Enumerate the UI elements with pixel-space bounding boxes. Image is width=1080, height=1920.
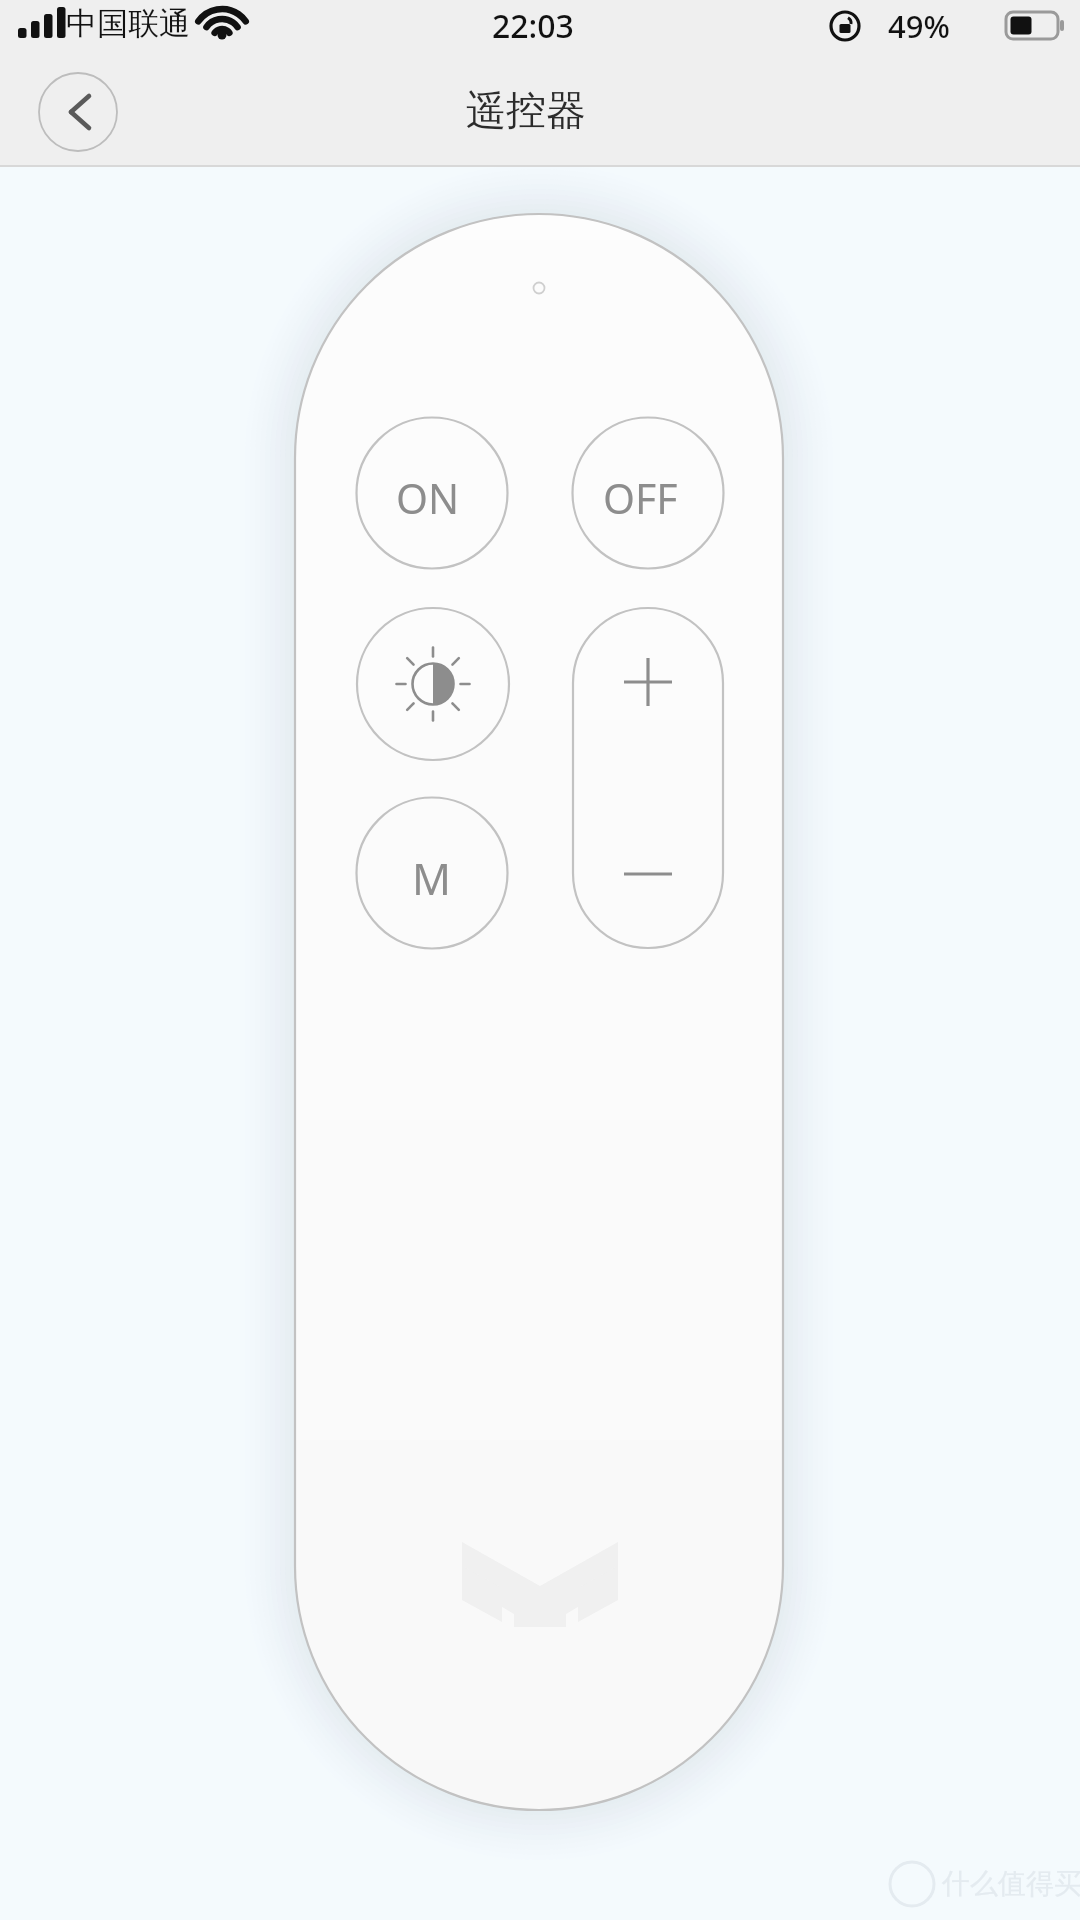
staticText: OFF xyxy=(603,470,678,526)
staticText: ON xyxy=(396,470,460,526)
staticText: 遥控器 xyxy=(466,85,586,135)
button[interactable] xyxy=(572,418,723,569)
button[interactable] xyxy=(357,418,508,569)
button[interactable] xyxy=(357,798,508,949)
staticText: 中国联通 xyxy=(66,4,190,43)
staticText: 22:03 xyxy=(492,4,574,48)
staticText: 49% xyxy=(888,5,950,47)
button[interactable]: Brightness xyxy=(357,608,509,760)
button[interactable]: Back xyxy=(39,73,117,151)
button[interactable]: Decrease brightness xyxy=(573,778,723,948)
staticText: 什么值得买 xyxy=(942,1866,1080,1901)
staticText: M xyxy=(412,849,452,908)
button[interactable]: Increase brightness xyxy=(573,608,723,778)
